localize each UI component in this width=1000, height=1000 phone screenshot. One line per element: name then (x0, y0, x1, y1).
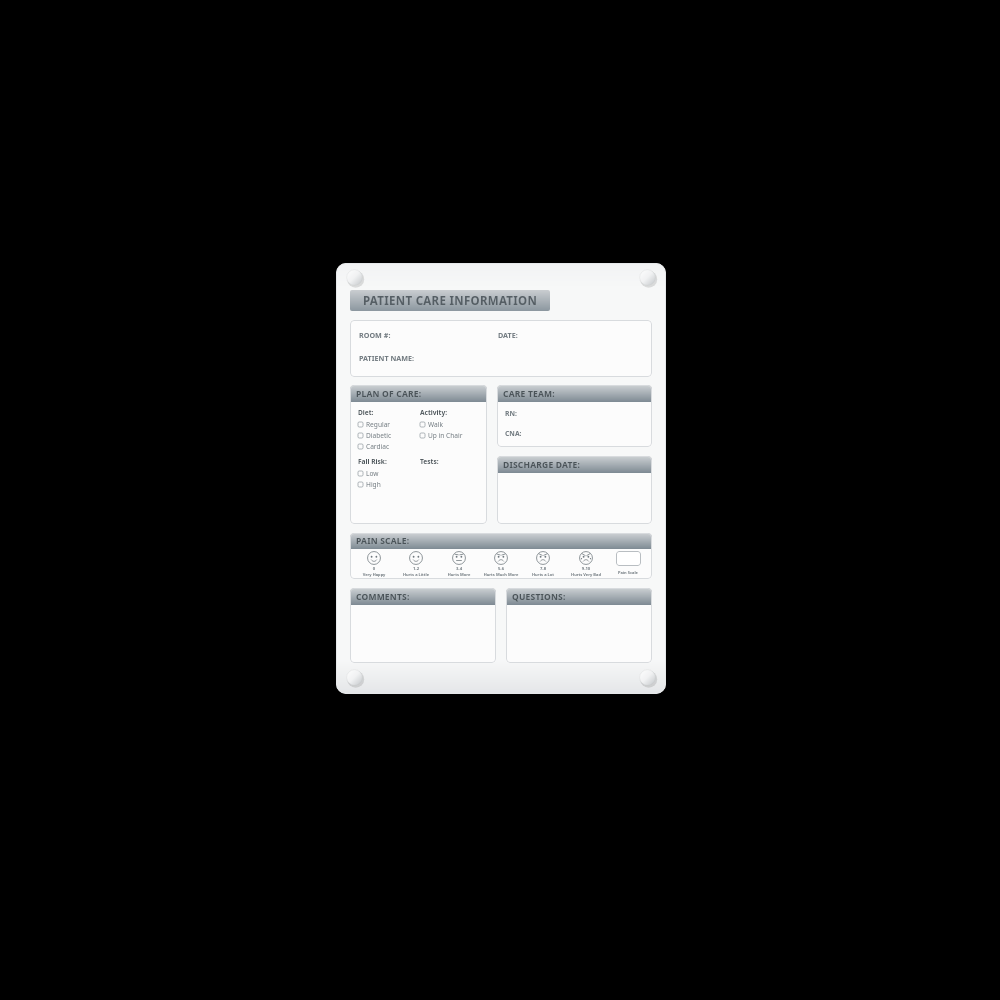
staticText: Walk (428, 420, 443, 429)
staticText: 0 (354, 566, 394, 572)
button[interactable]: Low (358, 468, 420, 479)
staticText: Diabetic (366, 431, 392, 440)
staticText: PATIENT NAME: (359, 353, 415, 363)
staticText: PATIENT CARE INFORMATION (363, 293, 538, 309)
staticText: Pain Scale (608, 570, 648, 575)
button[interactable]: Pain level 7-8 Hurts a Lot (523, 551, 563, 577)
button[interactable]: Pain level 5-6 Hurts Much More (481, 551, 521, 577)
staticText: 9-10 (566, 566, 606, 572)
staticText: CNA: (505, 429, 522, 438)
button[interactable]: Diabetic (358, 430, 420, 441)
staticText: DATE: (498, 330, 518, 340)
staticText: Hurts a Little (396, 572, 436, 577)
staticText: QUESTIONS: (512, 591, 566, 603)
button[interactable]: COMMENTS: (350, 588, 496, 605)
staticText: Regular (366, 420, 391, 429)
staticText: Up in Chair (428, 431, 463, 440)
button[interactable]: Pain level 9-10 Hurts Very Bad (566, 551, 606, 577)
staticText: High (366, 480, 381, 489)
staticText: Tests: (420, 457, 439, 466)
button[interactable]: Pain level 0 Very Happy (354, 551, 394, 577)
staticText: Hurts a Lot (523, 572, 563, 577)
staticText: RN: (505, 409, 517, 418)
staticText: 7-8 (523, 566, 563, 572)
staticText: Very Happy (354, 572, 394, 577)
staticText: DISCHARGE DATE: (503, 459, 581, 471)
staticText: 3-4 (439, 566, 479, 572)
button[interactable]: ROOM #: (350, 320, 652, 377)
button[interactable]: Pain level 3-4 Hurts More (439, 551, 479, 577)
button[interactable]: QUESTIONS: (506, 588, 652, 605)
staticText: PLAN OF CARE: (356, 388, 422, 400)
button[interactable]: DISCHARGE DATE: (497, 456, 652, 473)
staticText: Hurts Very Bad (566, 572, 606, 577)
staticText: CARE TEAM: (503, 388, 555, 400)
button[interactable]: Pain Scale (608, 551, 648, 575)
staticText: 1-2 (396, 566, 436, 572)
button[interactable]: Walk (420, 419, 482, 430)
button[interactable]: Regular (358, 419, 420, 430)
staticText: Cardiac (366, 442, 390, 451)
button[interactable]: PATIENT CARE INFORMATION (350, 290, 550, 311)
button[interactable]: High (358, 479, 420, 490)
button[interactable]: PLAN OF CARE: (350, 385, 487, 402)
staticText: Activity: (420, 408, 448, 417)
staticText: 5-6 (481, 566, 521, 572)
staticText: Low (366, 469, 379, 478)
button[interactable]: Up in Chair (420, 430, 482, 441)
button[interactable]: CARE TEAM: (497, 385, 652, 402)
staticText: Hurts Much More (481, 572, 521, 577)
staticText: PAIN SCALE: (356, 535, 410, 547)
staticText: Diet: (358, 408, 374, 417)
button[interactable]: PAIN SCALE: (350, 533, 652, 549)
button[interactable]: Cardiac (358, 441, 420, 452)
staticText: Fall Risk: (358, 457, 387, 466)
staticText: COMMENTS: (356, 591, 410, 603)
staticText: Hurts More (439, 572, 479, 577)
staticText: ROOM #: (359, 330, 391, 340)
button[interactable]: Pain level 1-2 Hurts a Little (396, 551, 436, 577)
